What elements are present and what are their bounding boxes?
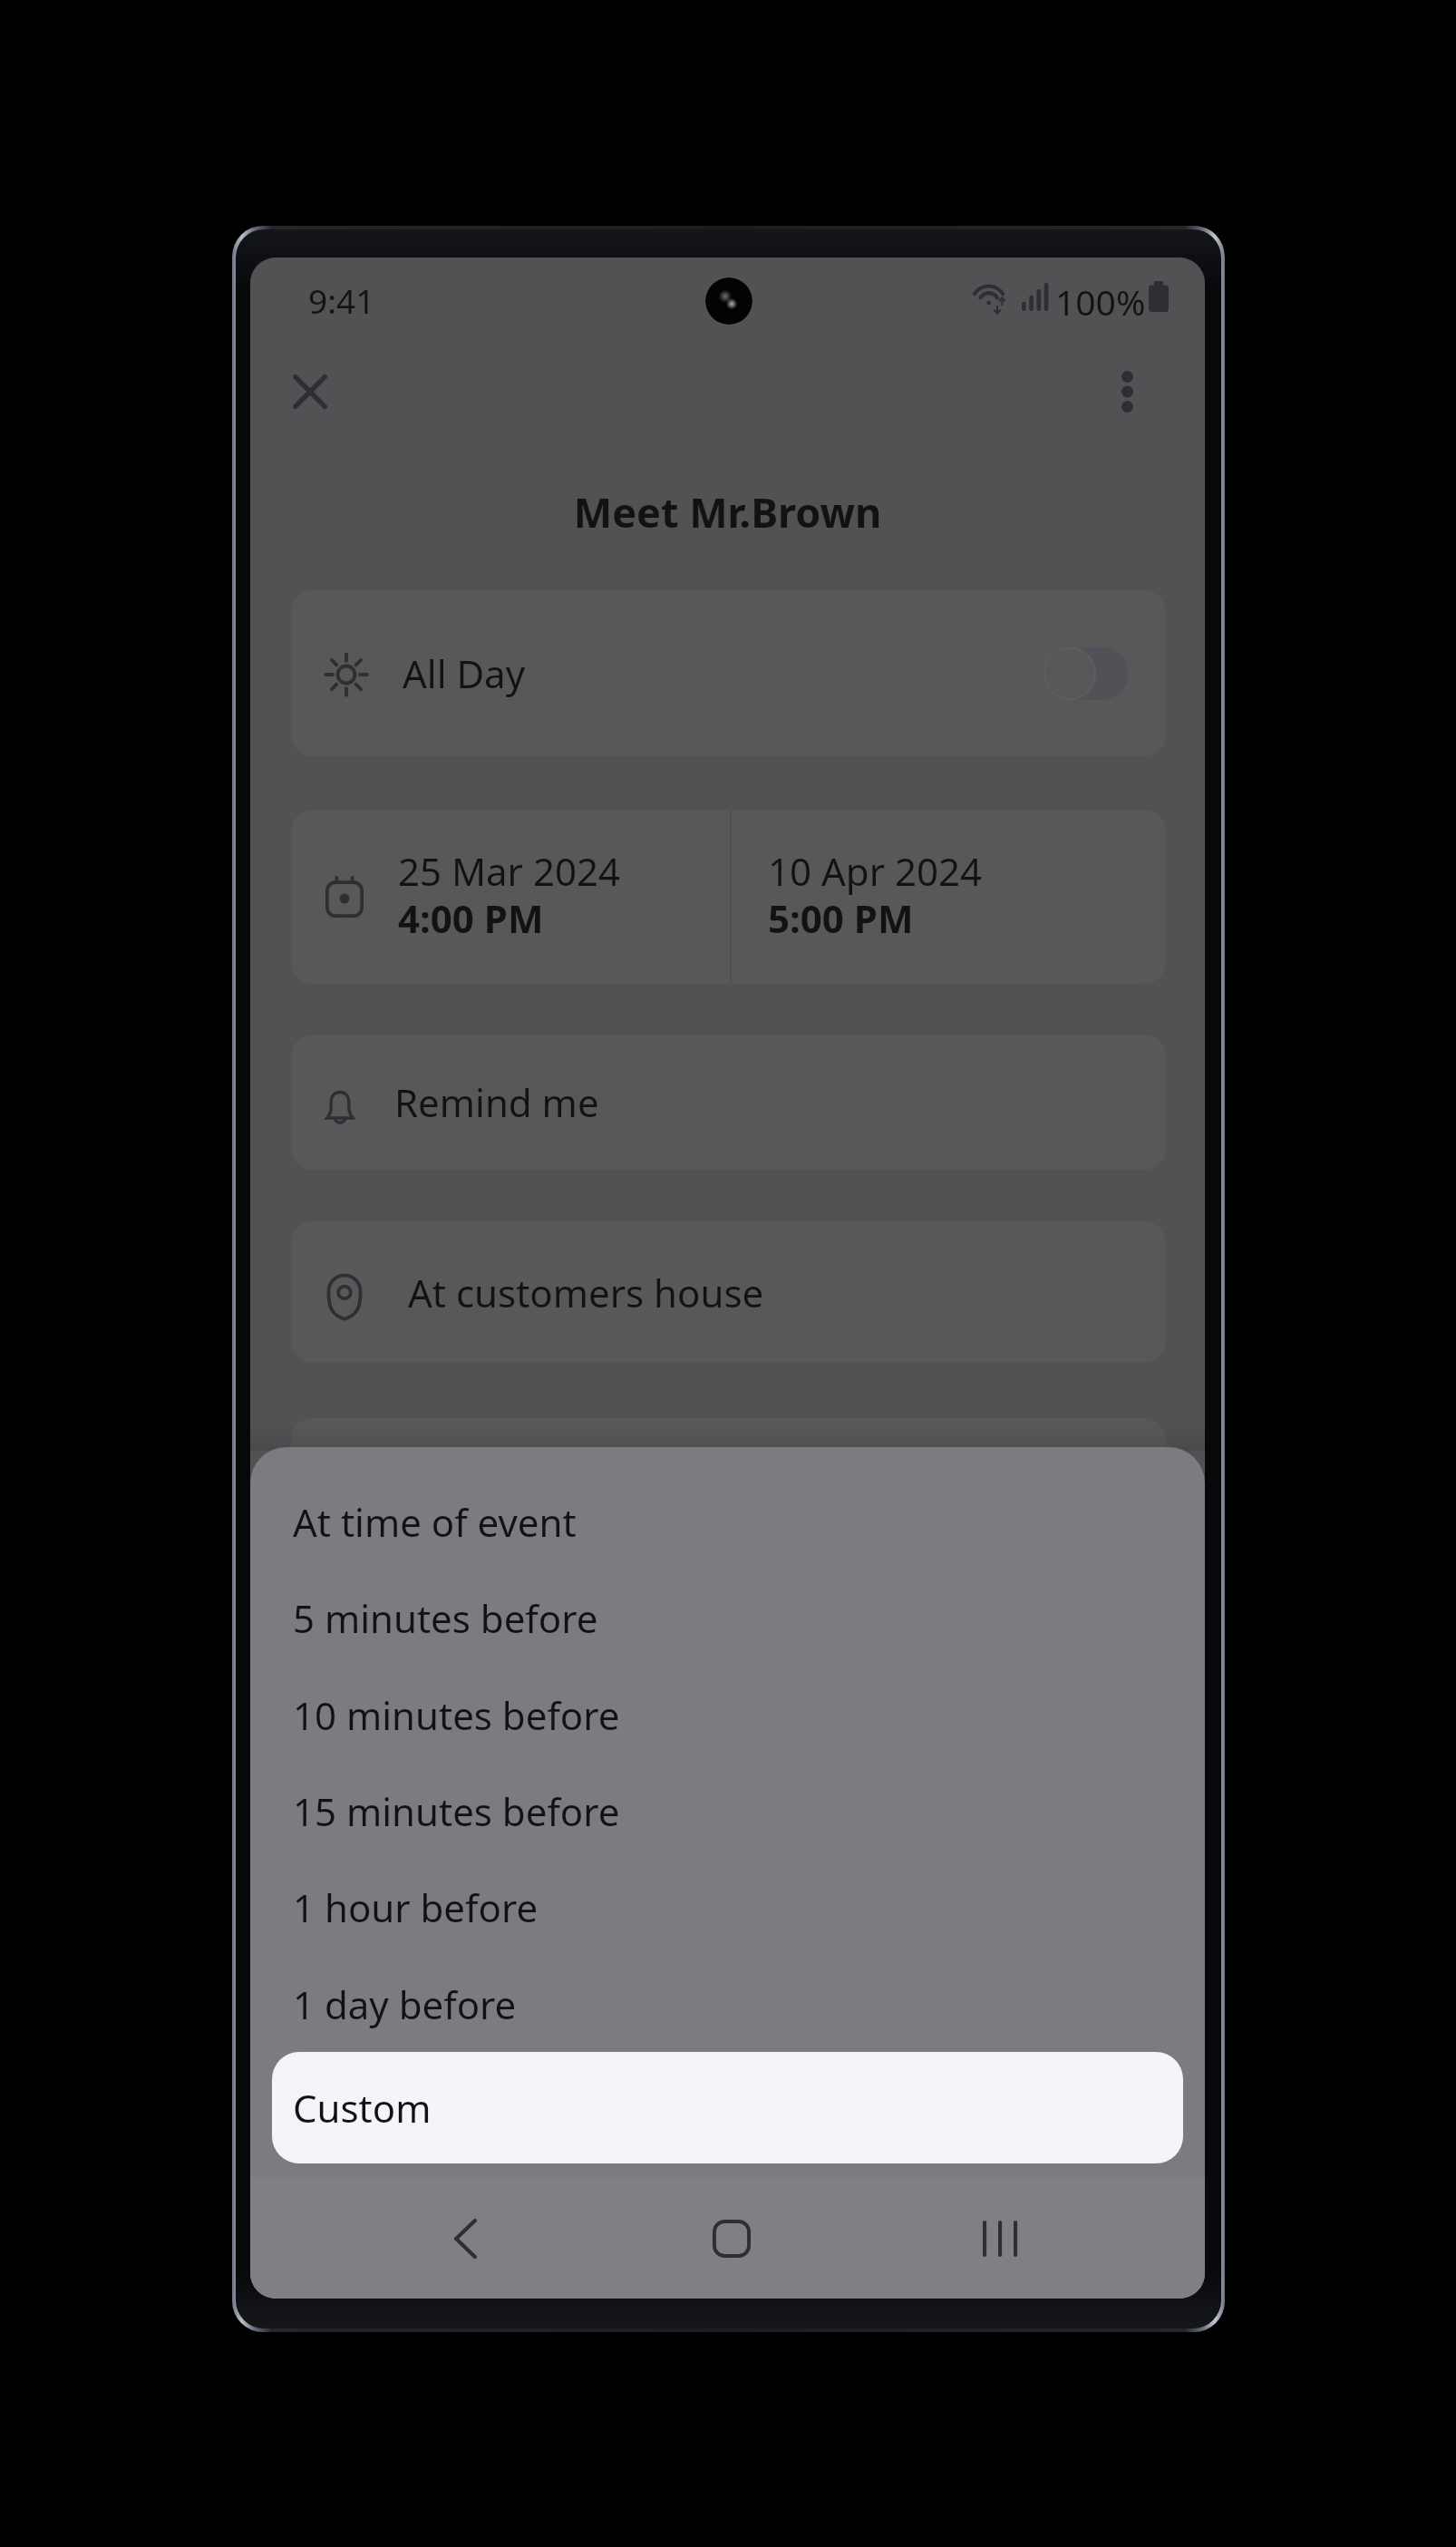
staticText: 9:41 <box>308 277 375 323</box>
button[interactable]: 1 day before <box>250 1956 1205 2052</box>
staticText: 5 minutes before <box>293 1592 598 1644</box>
button[interactable]: Back <box>358 2178 572 2299</box>
staticText: 5:00 PM <box>768 892 914 944</box>
button[interactable]: 15 minutes before <box>250 1763 1205 1859</box>
staticText: Remind me <box>394 1076 599 1128</box>
button[interactable]: At customers house <box>291 1221 1166 1363</box>
staticText: 1 day before <box>293 1978 517 2030</box>
staticText: At time of event <box>293 1496 577 1548</box>
button[interactable]: Remind me <box>291 1035 1166 1170</box>
button[interactable]: Custom <box>272 2052 1183 2163</box>
staticText: 4:00 PM <box>398 892 544 944</box>
button[interactable]: More options <box>1083 348 1170 435</box>
staticText: Meet Mr.Brown <box>250 484 1205 540</box>
button[interactable]: 5 minutes before <box>250 1570 1205 1666</box>
button[interactable]: Close <box>267 348 354 435</box>
staticText: At customers house <box>408 1267 764 1318</box>
staticText: 10 Apr 2024 <box>768 845 982 897</box>
staticText: All Day <box>403 647 526 699</box>
staticText: Custom <box>293 2082 432 2134</box>
button[interactable]: Recents <box>893 2178 1107 2299</box>
button[interactable]: All Day <box>291 590 1166 756</box>
button[interactable]: 10 minutes before <box>250 1667 1205 1763</box>
staticText: 15 minutes before <box>293 1785 620 1837</box>
button[interactable]: 1 hour before <box>250 1859 1205 1955</box>
staticText: 25 Mar 2024 <box>398 845 620 897</box>
button[interactable]: At time of event <box>250 1473 1205 1570</box>
staticText: 1 hour before <box>293 1881 539 1933</box>
staticText: 10 minutes before <box>293 1689 620 1741</box>
button[interactable]: 10 Apr 2024 <box>768 845 1076 949</box>
staticText: 100% <box>1055 277 1146 326</box>
button[interactable]: 25 Mar 2024 <box>398 845 706 949</box>
button[interactable]: Home <box>625 2178 839 2299</box>
